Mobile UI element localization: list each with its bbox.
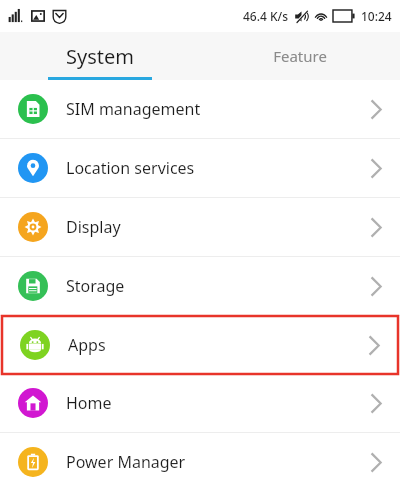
staticText: Storage <box>66 275 125 297</box>
staticText: Feature <box>273 46 327 66</box>
staticText: Location services <box>66 157 195 179</box>
button[interactable]: SIM management <box>0 80 400 138</box>
button[interactable]: Feature <box>200 32 400 80</box>
button[interactable]: Apps <box>2 316 398 374</box>
button[interactable]: System <box>0 32 200 80</box>
staticText: SIM management <box>66 98 201 120</box>
staticText: Power Manager <box>66 451 186 473</box>
button[interactable]: Storage <box>0 257 400 315</box>
staticText: System <box>66 43 134 70</box>
button[interactable]: Home <box>0 374 400 432</box>
staticText: 10:24 <box>361 8 392 24</box>
staticText: Apps <box>68 334 106 356</box>
staticText: 46.4 K/s <box>243 8 289 24</box>
button[interactable]: Location services <box>0 139 400 197</box>
button[interactable]: Display <box>0 198 400 256</box>
button[interactable]: Power Manager <box>0 433 400 491</box>
staticText: Display <box>66 216 121 238</box>
staticText: Home <box>66 392 112 414</box>
